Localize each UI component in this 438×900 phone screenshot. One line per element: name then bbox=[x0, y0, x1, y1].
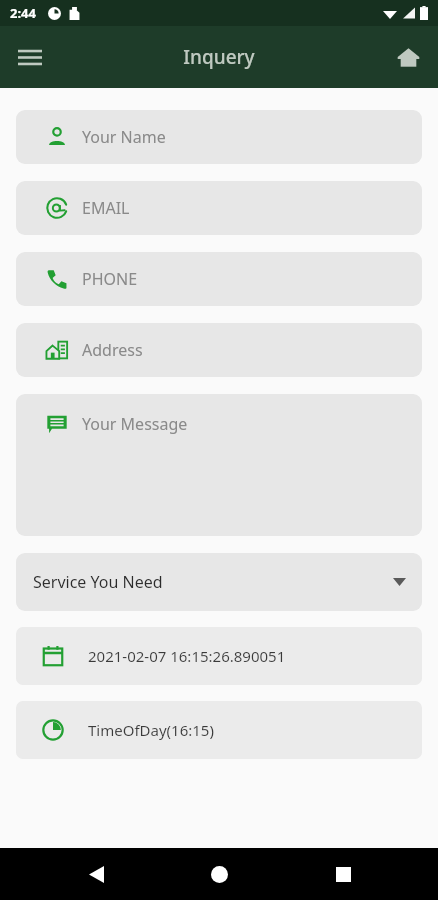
staticText: EMAIL bbox=[82, 197, 130, 219]
button[interactable]: Your Name bbox=[16, 110, 422, 164]
staticText: PHONE bbox=[82, 268, 138, 290]
staticText: Inquery bbox=[183, 44, 255, 70]
button[interactable]: Open navigation menu bbox=[6, 33, 54, 81]
staticText: Service You Need bbox=[33, 571, 163, 593]
staticText: 2021-02-07 16:15:26.890051 bbox=[88, 646, 286, 666]
button[interactable]: Home bbox=[384, 33, 432, 81]
button[interactable]: Recent apps bbox=[315, 848, 371, 900]
staticText: Your Name bbox=[82, 126, 166, 148]
button[interactable]: Home bbox=[191, 848, 247, 900]
button[interactable]: 2021-02-07 16:15:26.890051 bbox=[16, 627, 422, 685]
button[interactable]: Service You Need bbox=[16, 553, 422, 611]
staticText: Your Message bbox=[82, 413, 188, 435]
staticText: 2:44 bbox=[10, 4, 36, 22]
staticText: Address bbox=[82, 339, 143, 361]
button[interactable]: TimeOfDay(16:15) bbox=[16, 701, 422, 759]
staticText: TimeOfDay(16:15) bbox=[88, 720, 214, 740]
button[interactable]: Back bbox=[68, 848, 124, 900]
button[interactable]: PHONE bbox=[16, 252, 422, 306]
button[interactable]: Your Message bbox=[16, 394, 422, 536]
button[interactable]: Address bbox=[16, 323, 422, 377]
button[interactable]: EMAIL bbox=[16, 181, 422, 235]
